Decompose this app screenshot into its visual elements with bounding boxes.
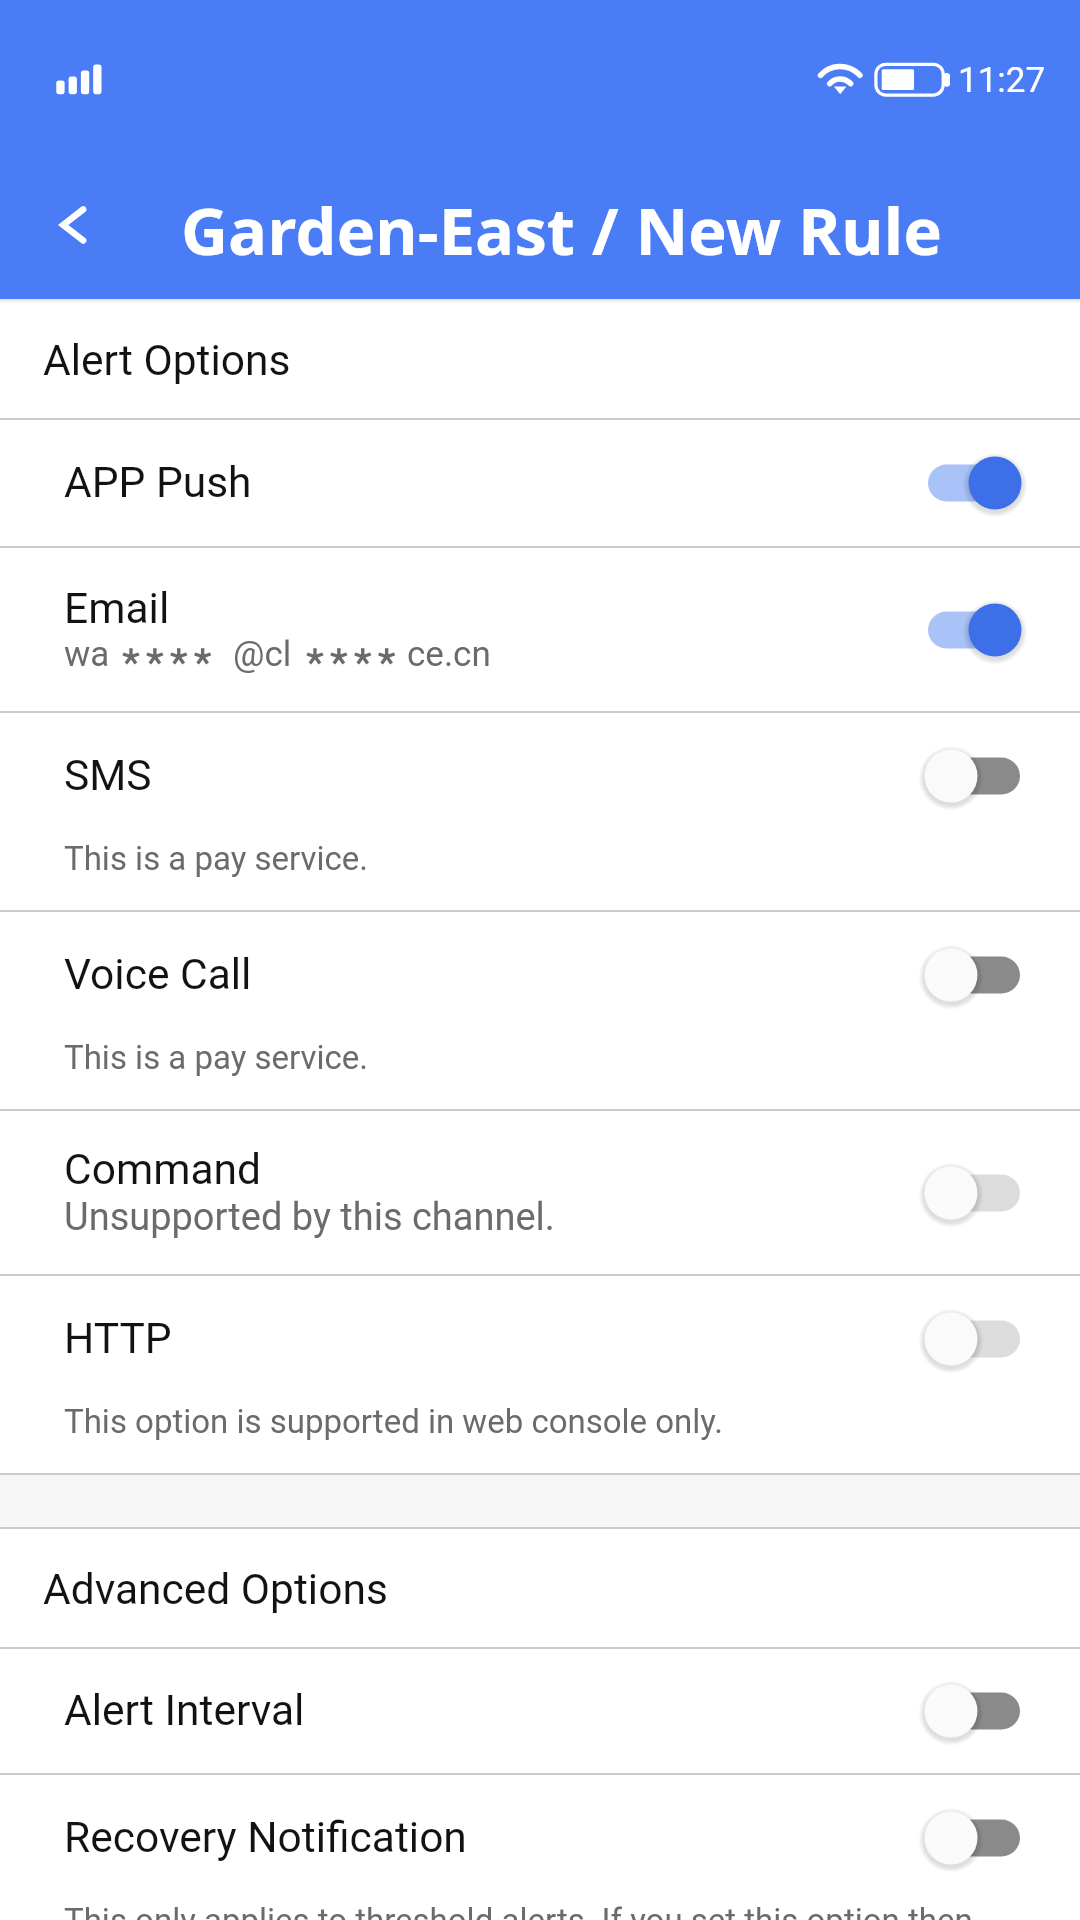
staticText: Voice Call	[64, 950, 252, 1000]
staticText: APP Push	[64, 458, 252, 508]
staticText: ce.cn	[407, 634, 491, 675]
staticText: Command	[64, 1145, 261, 1195]
staticText: Alert Interval	[64, 1686, 305, 1736]
staticText: Email	[64, 584, 170, 634]
staticText: Advanced Options	[43, 1565, 388, 1615]
staticText: HTTP	[64, 1314, 172, 1364]
button[interactable]: Toggle SMS	[924, 747, 1024, 805]
button[interactable]: Recovery Notification	[0, 1775, 1080, 1901]
button[interactable]: Alert Interval	[0, 1649, 1080, 1773]
staticText: Alert Options	[43, 336, 291, 386]
button[interactable]: Toggle HTTP	[924, 1310, 1024, 1368]
staticText: SMS	[64, 751, 152, 801]
button[interactable]: Voice Call	[0, 912, 1080, 1038]
button[interactable]: Toggle Email	[924, 601, 1024, 659]
button[interactable]: Toggle APP Push	[924, 454, 1024, 512]
staticText: 11:27	[958, 60, 1046, 101]
button[interactable]: Command	[0, 1111, 1080, 1274]
button[interactable]: Toggle Alert Interval	[924, 1682, 1024, 1740]
button[interactable]: Toggle Recovery Notification	[924, 1809, 1024, 1867]
button[interactable]: Email	[0, 548, 1080, 711]
staticText: Garden-East / New Rule	[181, 186, 942, 275]
staticText: This option is supported in web console …	[64, 1402, 723, 1441]
staticText: This is a pay service.	[64, 1038, 369, 1077]
button[interactable]: HTTP	[0, 1276, 1080, 1402]
button[interactable]: APP Push	[0, 420, 1080, 546]
staticText: Recovery Notification	[64, 1813, 467, 1863]
button[interactable]: SMS	[0, 713, 1080, 839]
button[interactable]: Back	[0, 160, 158, 299]
button[interactable]: Toggle Voice Call	[924, 946, 1024, 1004]
staticText: @cl	[233, 634, 292, 675]
staticText: This is a pay service.	[64, 839, 369, 878]
button[interactable]: Toggle Command	[924, 1164, 1024, 1222]
staticText: This only applies to threshold alerts. I…	[64, 1901, 973, 1920]
staticText: Unsupported by this channel.	[64, 1195, 555, 1240]
staticText: wa	[64, 634, 110, 675]
